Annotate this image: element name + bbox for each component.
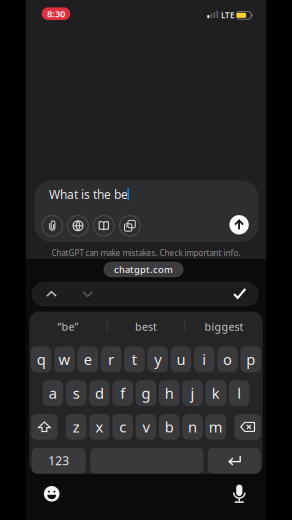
staticText: d [95,383,104,403]
button[interactable]: biggest [189,316,259,336]
button[interactable]: best [111,316,181,336]
button[interactable]: q [31,346,51,372]
button[interactable]: b [159,414,180,440]
button[interactable]: m [206,414,226,440]
staticText: r [108,350,114,369]
staticText: k [212,383,220,403]
button[interactable]: e [77,346,98,372]
button[interactable]: v [136,414,156,440]
staticText: t [132,350,137,369]
button[interactable]: Return [208,448,261,474]
button[interactable]: o [217,346,238,372]
staticText: c [119,417,126,437]
button[interactable]: Done [232,287,247,299]
staticText: 8:30 [47,7,65,20]
button[interactable]: n [182,414,203,440]
staticText: q [37,350,46,369]
button[interactable]: Stop screen recording [42,7,70,20]
button[interactable]: k [206,380,226,406]
button[interactable]: x [89,414,110,440]
button[interactable]: i [194,346,214,372]
staticText: LTE [221,10,234,20]
button[interactable]: y [147,346,168,372]
button[interactable]: chatgpt.com [103,262,183,277]
button[interactable]: l [229,380,249,406]
staticText: g [141,383,150,403]
staticText: f [120,383,125,403]
button[interactable]: h [159,380,180,406]
staticText: m [209,417,223,437]
button[interactable]: d [89,380,110,406]
button[interactable]: “be” [33,316,103,336]
staticText: biggest [204,319,243,334]
staticText: o [223,350,232,369]
staticText: best [135,319,157,334]
staticText: x [95,417,103,437]
staticText: w [58,350,70,369]
button[interactable]: Create image [120,215,140,236]
staticText: v [142,417,149,437]
staticText: b [165,417,174,437]
staticText: What is the be [49,186,128,202]
staticText: chatgpt.com [114,263,173,276]
button[interactable]: g [136,380,156,406]
button[interactable]: j [182,380,203,406]
button[interactable]: f [112,380,133,406]
staticText: ChatGPT can make mistakes. Check importa… [51,247,240,258]
button[interactable]: Delete [234,414,261,440]
staticText: e [84,350,92,369]
staticText: l [237,383,241,403]
button[interactable]: w [54,346,75,372]
button[interactable]: Send [229,215,249,234]
button[interactable]: Emoji [44,486,59,502]
button[interactable]: s [66,380,86,406]
staticText: s [73,383,80,403]
button[interactable]: z [66,414,86,440]
staticText: i [202,350,206,369]
staticText: z [73,417,80,437]
staticText: a [49,383,57,403]
button[interactable]: Next field [82,291,93,297]
staticText: j [191,383,195,403]
button[interactable]: c [112,414,133,440]
staticText: y [154,350,161,369]
button[interactable]: Dictation [232,484,247,503]
button[interactable]: Previous field [46,291,57,297]
button[interactable]: Search the web [68,215,88,236]
button[interactable]: a [42,380,63,406]
staticText: 123 [48,453,69,469]
staticText: p [246,350,255,369]
button[interactable]: 123 [32,448,86,474]
button[interactable]: p [240,346,261,372]
button[interactable]: u [171,346,191,372]
staticText: h [165,383,174,403]
staticText: “be” [57,319,78,334]
button[interactable]: r [101,346,121,372]
button[interactable]: Attach file [42,215,63,236]
button[interactable]: Shift [31,414,58,440]
button[interactable]: Study [93,215,114,236]
staticText: u [176,350,185,369]
staticText: n [188,417,197,437]
button[interactable]: t [124,346,145,372]
